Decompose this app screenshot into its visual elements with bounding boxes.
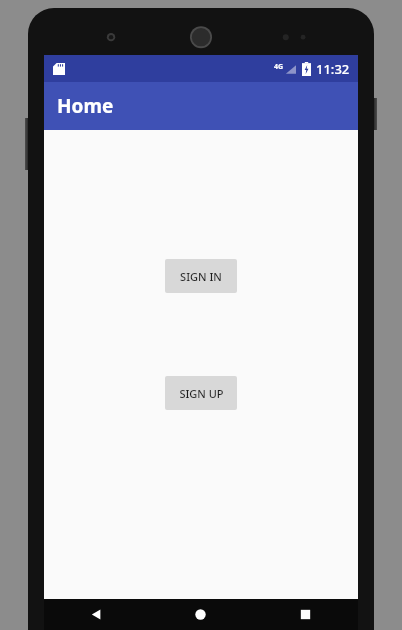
staticText: SIGN UP (179, 386, 224, 401)
staticText: SIGN IN (180, 269, 222, 284)
button[interactable]: Home (148, 599, 253, 630)
button[interactable]: SIGN UP (165, 376, 237, 410)
button[interactable]: SIGN IN (165, 259, 237, 293)
button[interactable]: Recent apps (253, 599, 358, 630)
staticText: 4G (274, 62, 284, 72)
button[interactable]: Back (44, 599, 148, 630)
staticText: 11:32 (316, 60, 350, 78)
staticText: Home (57, 93, 114, 119)
